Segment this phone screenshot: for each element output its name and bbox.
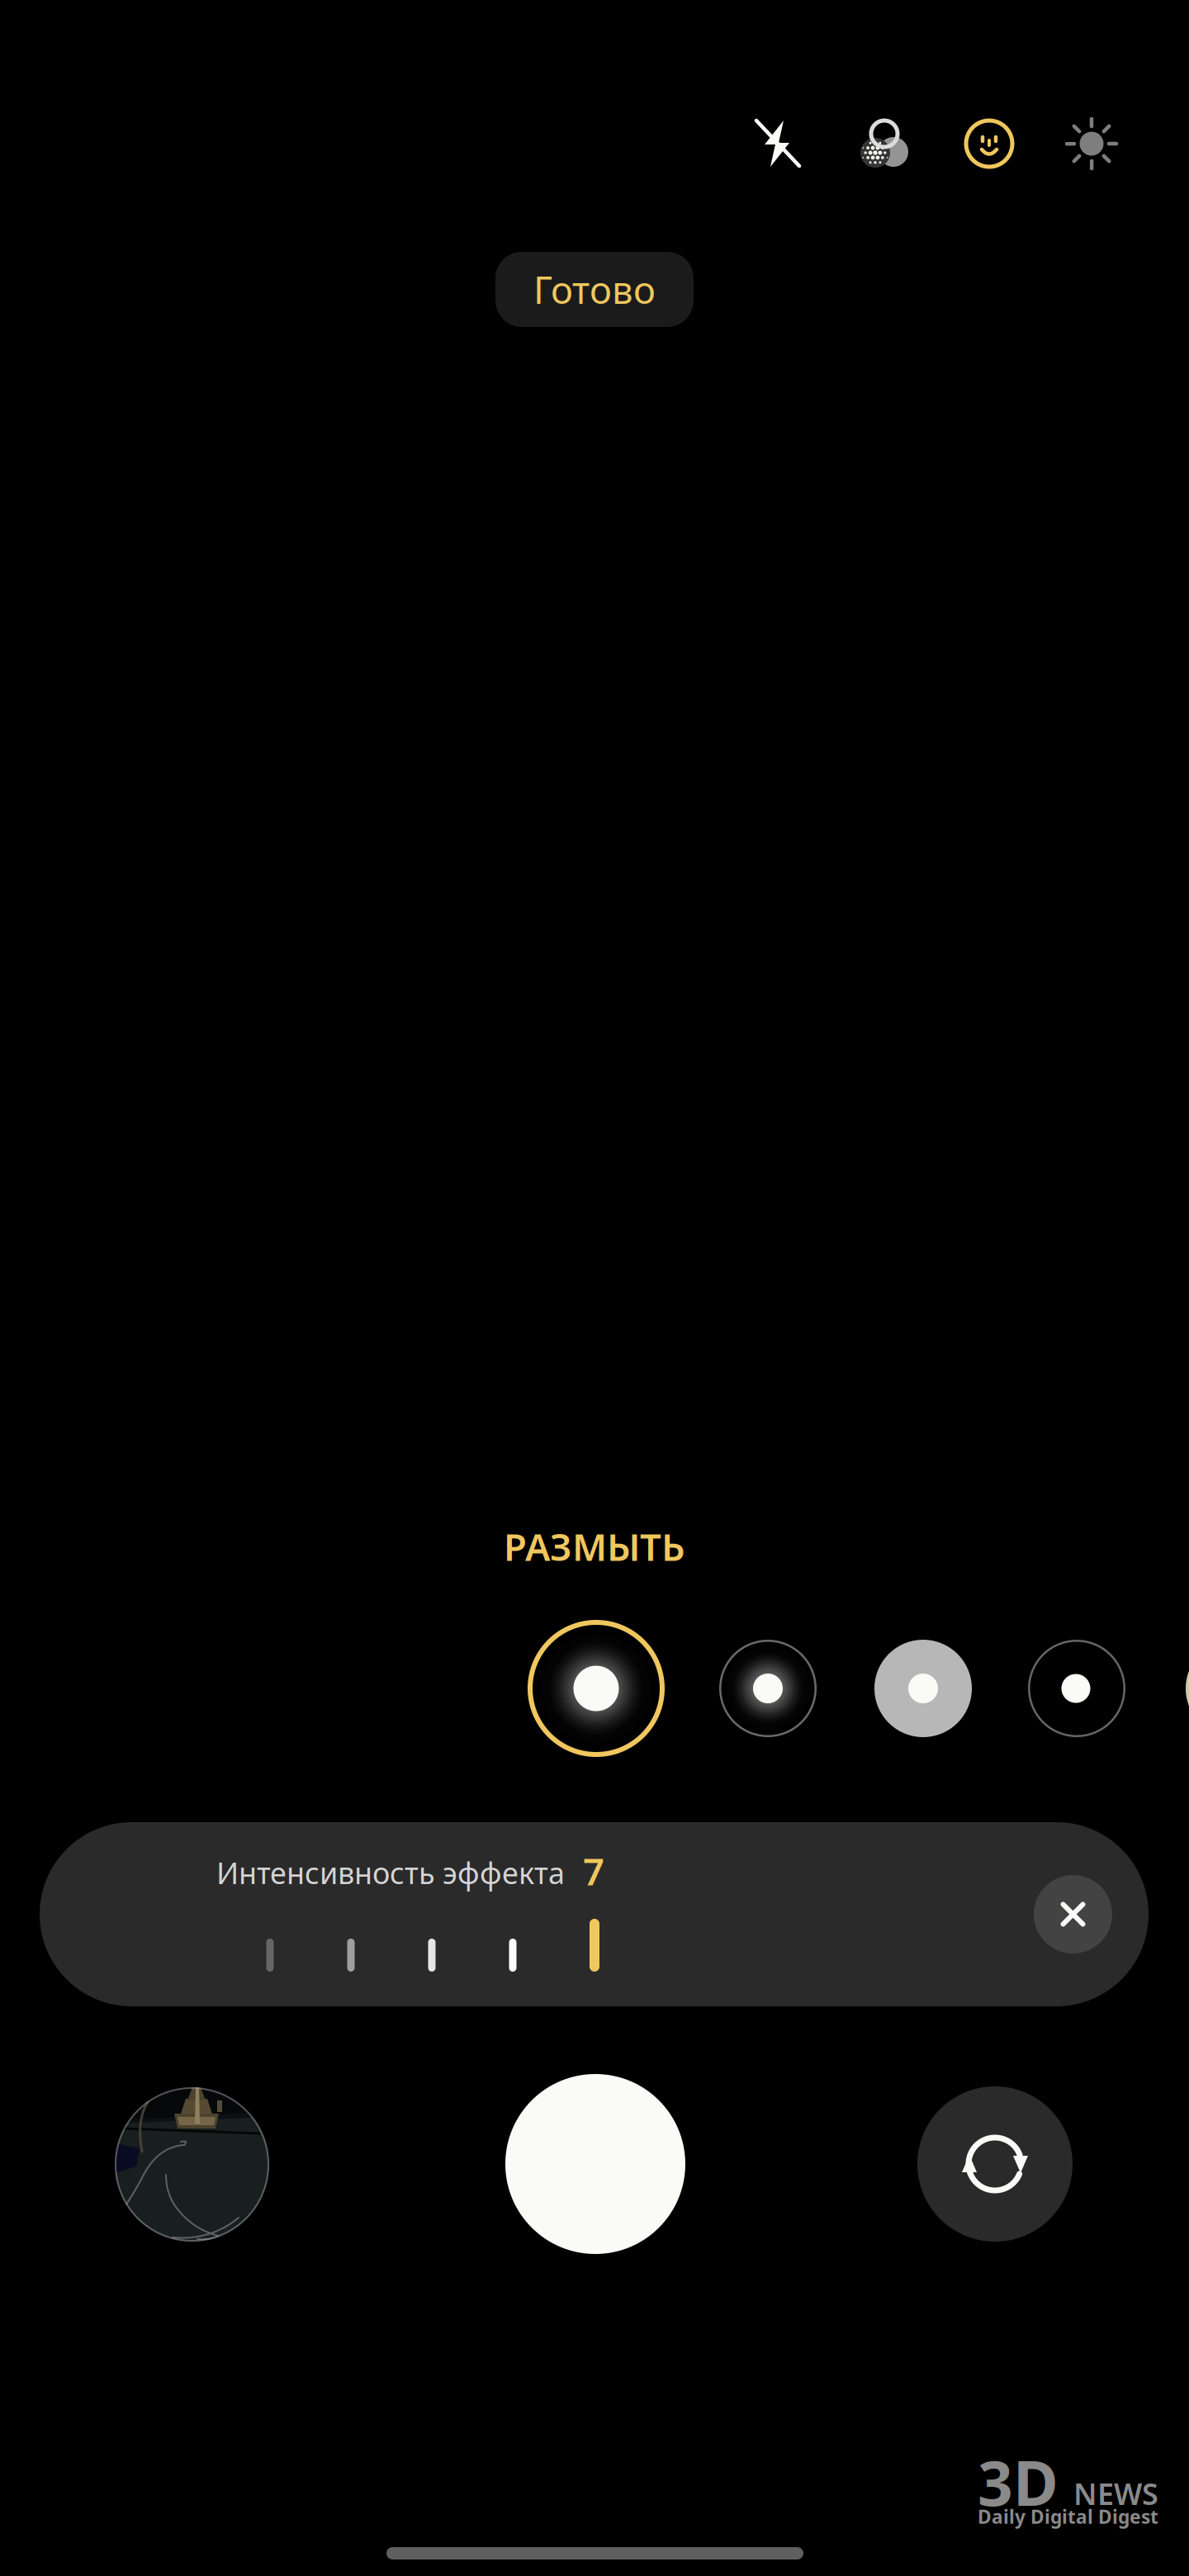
button[interactable]: Filters xyxy=(838,98,929,189)
staticText: Готово xyxy=(533,265,656,314)
button[interactable]: Blur effect 1 xyxy=(528,1620,665,1757)
staticText: Daily Digital Digest xyxy=(978,2504,1158,2529)
button[interactable]: Blur effect 5 xyxy=(1186,1640,1189,1737)
staticText: Интенсивность эффекта xyxy=(216,1853,565,1892)
button[interactable]: Switch camera xyxy=(917,2086,1073,2242)
button[interactable]: Close xyxy=(1034,1875,1112,1953)
button[interactable]: Brightness xyxy=(1046,98,1137,189)
staticText: NEWS xyxy=(1073,2474,1158,2513)
staticText: 3D xyxy=(978,2441,1059,2523)
button[interactable]: Blur effect 3 xyxy=(874,1640,972,1737)
button[interactable]: Flash off xyxy=(733,98,824,189)
staticText: РАЗМЫТЬ xyxy=(504,1522,685,1571)
button[interactable]: Blur effect 2 xyxy=(719,1640,817,1737)
button[interactable]: Gallery xyxy=(115,2087,269,2242)
staticText: 7 xyxy=(583,1846,604,1896)
button[interactable]: Blur effect 4 xyxy=(1028,1640,1125,1737)
button[interactable]: Take photo xyxy=(505,2074,685,2254)
button[interactable]: Готово xyxy=(495,252,694,327)
button[interactable]: Beauty xyxy=(944,98,1035,189)
